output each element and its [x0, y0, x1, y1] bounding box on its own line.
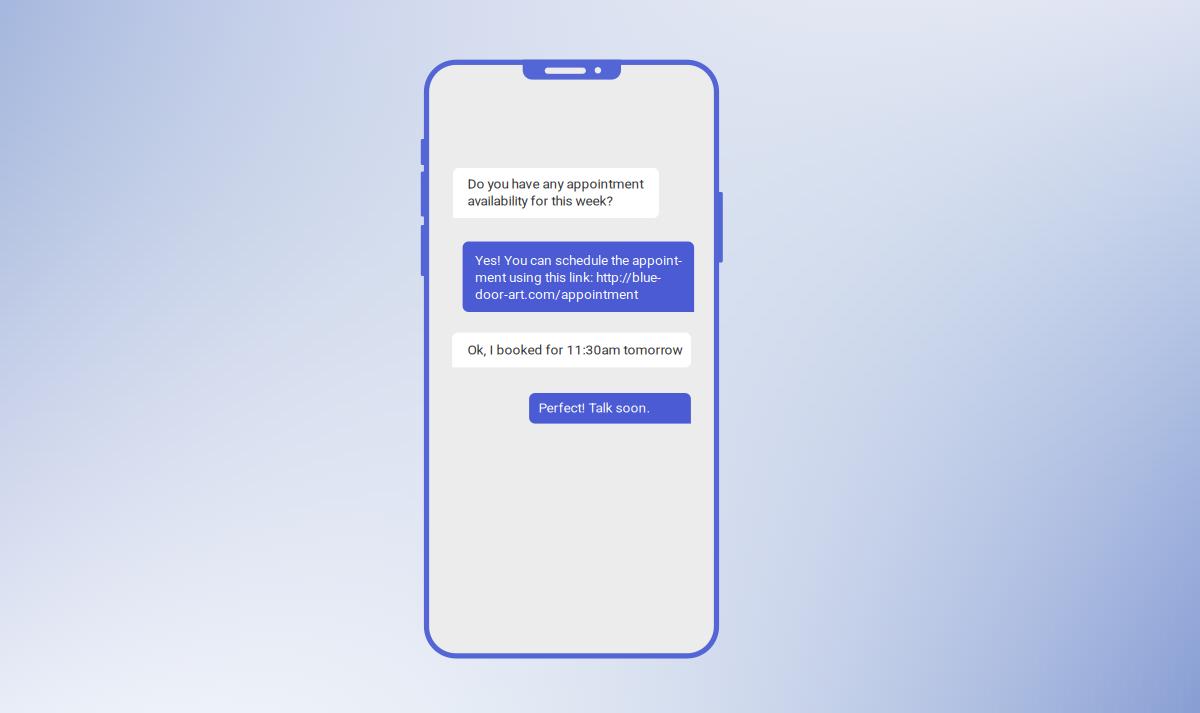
button[interactable]: Yes! You can schedule the appoint-	[463, 241, 694, 312]
button[interactable]: Perfect! Talk soon.	[529, 393, 691, 424]
staticText: availability for this week?	[467, 193, 612, 209]
button[interactable]: Ring/Silent switch	[421, 139, 428, 165]
staticText: door-art.com/appointment	[475, 286, 638, 302]
staticText: Yes! You can schedule the appoint-	[475, 252, 682, 268]
staticText: Perfect! Talk soon.	[538, 400, 650, 416]
button[interactable]: Ok, I booked for 11:30am tomorrow	[452, 333, 691, 367]
staticText: ment using this link: http://blue-	[475, 269, 661, 285]
staticText: Ok, I booked for 11:30am tomorrow	[467, 342, 682, 358]
staticText: Do you have any appointment	[467, 176, 643, 192]
button[interactable]: Do you have any appointment	[453, 168, 659, 218]
button[interactable]: Side button	[715, 192, 723, 262]
